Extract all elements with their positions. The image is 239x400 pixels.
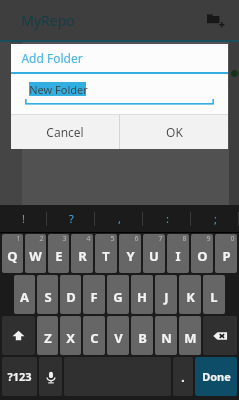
staticText: ! (22, 211, 25, 226)
staticText: 1 (16, 234, 21, 244)
staticText: Benefits Information (58, 62, 166, 77)
button[interactable]: C (83, 316, 105, 355)
button[interactable]: New Folder (25, 81, 214, 107)
staticText: A (20, 288, 29, 306)
staticText: 3 (62, 234, 67, 244)
staticText: ?123 (7, 369, 32, 384)
button[interactable]: : (143, 205, 191, 232)
staticText: 8 (182, 234, 187, 244)
button[interactable]: H (131, 275, 153, 314)
button[interactable]: X (60, 316, 81, 355)
staticText: N (161, 329, 172, 347)
button[interactable]: S (37, 275, 58, 314)
staticText: B (138, 329, 147, 347)
staticText: M (184, 329, 197, 347)
staticText: 9 (206, 234, 211, 244)
staticText: ? (69, 211, 74, 226)
button[interactable]: D (60, 275, 81, 314)
staticText: , (118, 211, 121, 226)
staticText: U (149, 247, 159, 265)
staticText: Other Documents (58, 97, 151, 112)
staticText: X (66, 329, 75, 347)
button[interactable]: Cancel (11, 115, 119, 149)
staticText: : (166, 211, 169, 226)
staticText: I (175, 247, 181, 265)
staticText: 4 (86, 234, 91, 244)
staticText: L (210, 288, 218, 306)
staticText: P (222, 247, 231, 265)
button[interactable]: ? (47, 205, 95, 232)
staticText: Add Folder (21, 50, 83, 66)
staticText: V (114, 329, 123, 347)
button[interactable]: Benefits Information (22, 52, 229, 86)
staticText: 0 (230, 234, 235, 244)
button[interactable]: N (155, 316, 177, 355)
staticText: W (29, 247, 42, 265)
button[interactable]: 4 (71, 234, 93, 273)
staticText: Done (202, 369, 231, 384)
button[interactable]: F (83, 275, 105, 314)
staticText: 6 (134, 234, 139, 244)
button[interactable]: Backspace (203, 316, 237, 355)
staticText: . (181, 369, 185, 385)
button[interactable]: , (95, 205, 143, 232)
button[interactable]: 3 (48, 234, 69, 273)
staticText: OK (166, 124, 183, 140)
button[interactable]: Z (37, 316, 58, 355)
staticText: T (102, 247, 110, 265)
staticText: R (78, 247, 87, 265)
staticText: S (44, 288, 52, 306)
staticText: MyRepo (21, 11, 75, 30)
button[interactable]: 2 (25, 234, 46, 273)
button[interactable]: M (179, 316, 201, 355)
button[interactable]: 1 (2, 234, 23, 273)
button[interactable]: 8 (167, 234, 189, 273)
button[interactable]: J (155, 275, 177, 314)
staticText: ; (214, 211, 217, 226)
staticText: 7 (158, 234, 163, 244)
button[interactable]: 9 (191, 234, 213, 273)
button[interactable]: Add folder (203, 7, 229, 33)
button[interactable]: Done (195, 357, 237, 396)
staticText: E (55, 247, 63, 265)
button[interactable]: . (173, 357, 193, 396)
button[interactable]: Shift (2, 316, 35, 355)
button[interactable]: OK (120, 115, 228, 149)
button[interactable]: ?123 (2, 357, 37, 396)
button[interactable]: A (14, 275, 35, 314)
button[interactable]: 5 (95, 234, 117, 273)
staticText: H (137, 288, 147, 306)
button[interactable]: Other Documents (22, 87, 229, 121)
staticText: Y (126, 247, 135, 265)
staticText: D (66, 288, 76, 306)
button[interactable]: L (203, 275, 225, 314)
button[interactable]: G (107, 275, 129, 314)
staticText: G (113, 288, 123, 306)
staticText: 5 (110, 234, 115, 244)
staticText: Q (7, 247, 18, 265)
button[interactable]: K (179, 275, 201, 314)
staticText: New Folder (29, 82, 88, 97)
staticText: K (186, 288, 195, 306)
button[interactable]: ; (191, 205, 239, 232)
button[interactable]: 0 (215, 234, 237, 273)
button[interactable]: Voice input (39, 357, 62, 396)
staticText: Cancel (46, 124, 84, 140)
button[interactable]: 6 (119, 234, 141, 273)
button[interactable]: ! (0, 205, 47, 232)
staticText: 2 (39, 234, 44, 244)
staticText: J (164, 288, 169, 306)
staticText: O (197, 247, 208, 265)
button[interactable]: 7 (143, 234, 165, 273)
staticText: Z (44, 329, 52, 347)
button[interactable]: B (131, 316, 153, 355)
staticText: F (90, 288, 98, 306)
staticText: C (90, 329, 99, 347)
button[interactable]: V (107, 316, 129, 355)
